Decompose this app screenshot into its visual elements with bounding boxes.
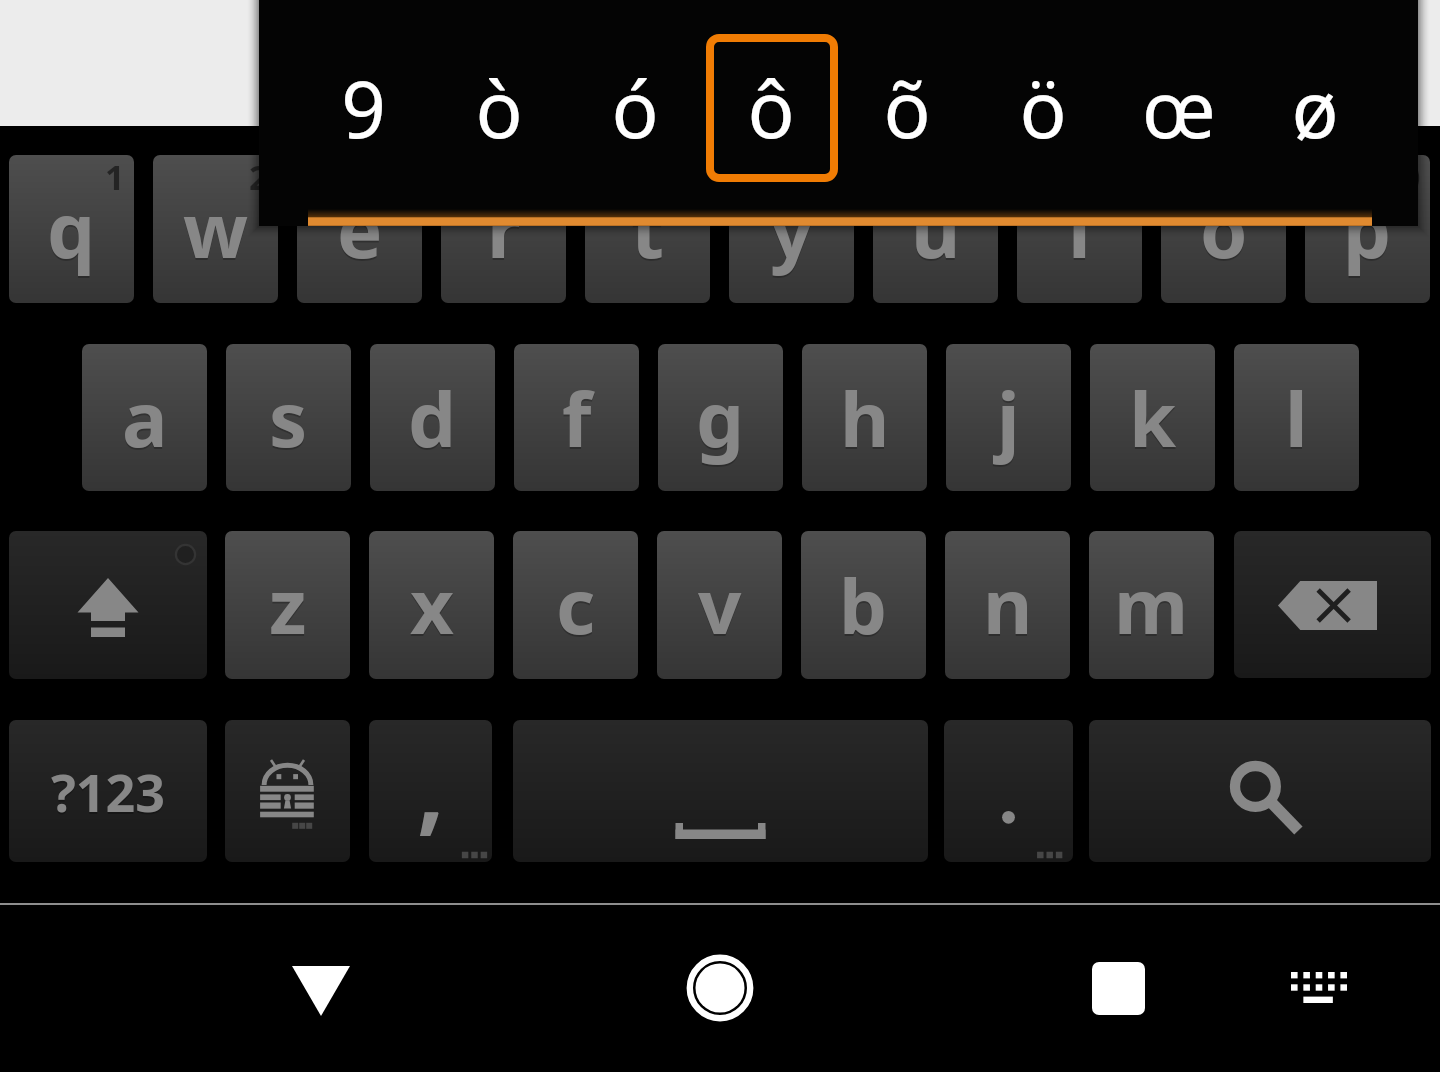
button[interactable]: r	[441, 155, 566, 303]
button[interactable]: j	[946, 344, 1071, 491]
button[interactable]: h	[802, 344, 927, 491]
button[interactable]: Backspace	[1234, 531, 1431, 678]
staticText: y	[770, 177, 814, 281]
staticText: t	[631, 177, 664, 281]
button[interactable]: 9	[295, 33, 431, 183]
button[interactable]: l	[1234, 344, 1359, 491]
staticText: c	[556, 553, 596, 657]
staticText: l	[1285, 368, 1308, 472]
button[interactable]: e	[297, 155, 422, 303]
button[interactable]: Shift	[9, 531, 207, 679]
button[interactable]: Change input method	[225, 720, 350, 862]
staticText: m	[1114, 553, 1189, 657]
button[interactable]: Home	[640, 908, 800, 1068]
staticText: i	[1068, 179, 1091, 283]
staticText: d	[408, 368, 457, 472]
staticText: 9	[341, 55, 386, 161]
staticText: v	[698, 555, 742, 659]
staticText: x	[410, 553, 454, 657]
staticText: ó	[611, 55, 659, 161]
button[interactable]: Recent apps	[1038, 908, 1198, 1068]
staticText: r	[487, 179, 521, 283]
button[interactable]: ø	[1247, 33, 1383, 183]
button[interactable]: Hide keyboard	[241, 911, 401, 1071]
button[interactable]: w	[153, 155, 278, 303]
button[interactable]: a	[82, 344, 207, 491]
staticText: g	[696, 366, 745, 470]
button[interactable]: z	[225, 531, 350, 679]
button[interactable]: õ	[839, 33, 975, 183]
staticText: 1	[105, 155, 125, 200]
staticText: s	[269, 368, 308, 472]
button[interactable]: v	[657, 531, 782, 679]
staticText: o	[1200, 179, 1248, 283]
button[interactable]: c	[513, 531, 638, 679]
staticText: ?123	[51, 756, 166, 827]
staticText: ô	[747, 55, 795, 161]
button[interactable]: Space	[513, 720, 928, 862]
staticText: ö	[1019, 55, 1067, 161]
staticText: z	[269, 553, 307, 657]
staticText: h	[840, 366, 890, 470]
button[interactable]: u	[873, 155, 998, 303]
staticText: ,	[417, 720, 445, 851]
staticText: q	[47, 177, 96, 281]
staticText: t	[631, 179, 664, 283]
button[interactable]: ò	[431, 33, 567, 183]
button[interactable]: g	[658, 344, 783, 491]
button[interactable]: ô	[703, 33, 839, 183]
staticText: u	[911, 179, 961, 283]
button[interactable]: m	[1089, 531, 1214, 679]
button[interactable]: Switch keyboard	[1238, 908, 1398, 1068]
staticText: b	[839, 553, 888, 657]
staticText: ?123	[51, 758, 166, 829]
staticText: d	[408, 366, 457, 470]
button[interactable]: s	[226, 344, 351, 491]
staticText: w	[183, 177, 249, 281]
staticText: e	[337, 177, 383, 281]
staticText: 2	[249, 155, 269, 200]
button[interactable]: d	[370, 344, 495, 491]
button[interactable]: Comma	[369, 720, 492, 862]
staticText: c	[556, 555, 596, 659]
button[interactable]: k	[1090, 344, 1215, 491]
staticText: k	[1129, 366, 1177, 470]
button[interactable]: f	[514, 344, 639, 491]
button[interactable]: y	[729, 155, 854, 303]
staticText: v	[698, 553, 742, 657]
staticText: p	[1343, 177, 1392, 281]
staticText: ò	[475, 55, 523, 161]
staticText: y	[770, 179, 814, 283]
button[interactable]: ö	[975, 33, 1111, 183]
button[interactable]: Search	[1089, 720, 1431, 862]
staticText: ø	[1291, 55, 1339, 161]
button[interactable]: t	[585, 155, 710, 303]
staticText: h	[840, 368, 890, 472]
staticText: u	[911, 177, 961, 281]
staticText: 6	[825, 155, 845, 200]
button[interactable]: ó	[567, 33, 703, 183]
button[interactable]: x	[369, 531, 494, 679]
staticText: o	[1200, 177, 1248, 281]
button[interactable]: Period	[944, 720, 1073, 862]
button[interactable]: œ	[1111, 33, 1247, 183]
button[interactable]: p	[1305, 155, 1430, 303]
staticText: œ	[1142, 55, 1216, 161]
button[interactable]: o	[1161, 155, 1286, 303]
button[interactable]: b	[801, 531, 926, 679]
staticText: f	[562, 366, 592, 470]
staticText: p	[1343, 179, 1392, 283]
staticText: g	[696, 368, 745, 472]
staticText: n	[983, 555, 1033, 659]
button[interactable]: ?123	[9, 720, 207, 862]
button[interactable]: n	[945, 531, 1070, 679]
button[interactable]: i	[1017, 155, 1142, 303]
staticText: w	[183, 179, 249, 283]
staticText: l	[1285, 366, 1308, 470]
staticText: b	[839, 555, 888, 659]
staticText: k	[1129, 368, 1177, 472]
button[interactable]: q	[9, 155, 134, 303]
